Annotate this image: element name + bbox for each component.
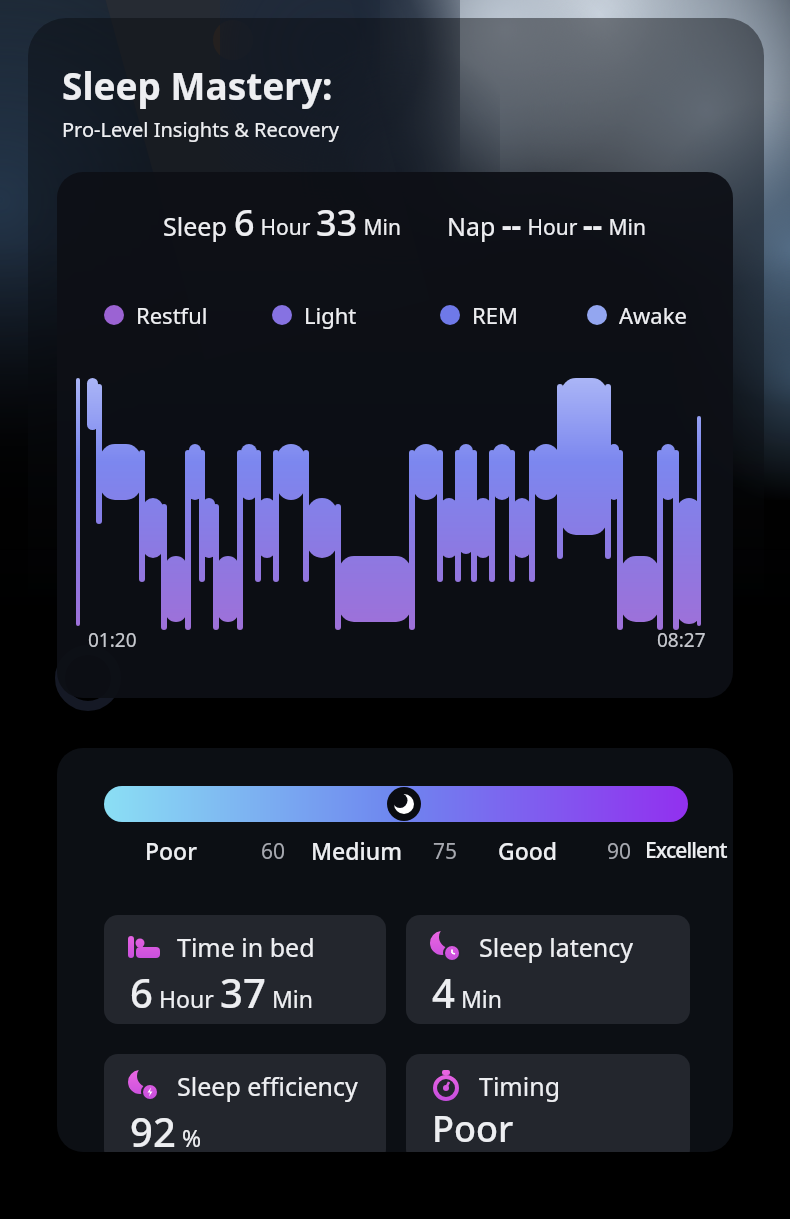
staticText: 08:27: [657, 627, 706, 653]
staticText: Light: [304, 300, 357, 330]
staticText: Pro-Level Insights & Recovery: [62, 116, 339, 143]
staticText: 37: [220, 965, 266, 1019]
staticText: %: [176, 1122, 202, 1152]
staticText: Good: [498, 835, 558, 866]
button[interactable]: Sleep efficiency: [104, 1054, 386, 1152]
staticText: Medium: [311, 835, 402, 866]
staticText: Timing: [479, 1069, 561, 1103]
staticText: Time in bed: [177, 930, 315, 964]
staticText: Hour: [522, 213, 583, 242]
button[interactable]: Timing: [406, 1054, 690, 1152]
staticText: Sleep latency: [479, 930, 634, 964]
staticText: Hour: [255, 213, 316, 242]
staticText: 6: [234, 198, 255, 247]
staticText: Min: [358, 213, 401, 242]
staticText: Poor: [145, 835, 197, 866]
staticText: Sleep: [163, 209, 234, 243]
staticText: Min: [266, 983, 313, 1014]
staticText: Sleep efficiency: [177, 1069, 358, 1103]
staticText: Excellent: [645, 836, 727, 865]
button[interactable]: Sleep latency: [406, 915, 690, 1024]
staticText: Min: [455, 983, 502, 1014]
staticText: 4: [432, 965, 455, 1019]
staticText: 92: [130, 1104, 176, 1152]
staticText: --: [502, 204, 522, 245]
staticText: Poor: [432, 1104, 514, 1152]
button[interactable]: Time in bed: [104, 915, 386, 1024]
staticText: 90: [607, 837, 632, 866]
staticText: Hour: [153, 983, 220, 1014]
staticText: 01:20: [88, 627, 137, 653]
staticText: Nap: [447, 209, 502, 243]
staticText: --: [583, 204, 603, 245]
button[interactable]: [104, 786, 688, 822]
staticText: 6: [130, 965, 153, 1019]
staticText: 60: [261, 837, 286, 866]
staticText: Awake: [619, 300, 687, 330]
staticText: REM: [472, 300, 518, 330]
staticText: 75: [433, 837, 458, 866]
staticText: Sleep Mastery:: [62, 60, 333, 110]
staticText: Min: [603, 213, 646, 242]
staticText: 33: [316, 198, 358, 247]
staticText: Restful: [136, 300, 208, 330]
